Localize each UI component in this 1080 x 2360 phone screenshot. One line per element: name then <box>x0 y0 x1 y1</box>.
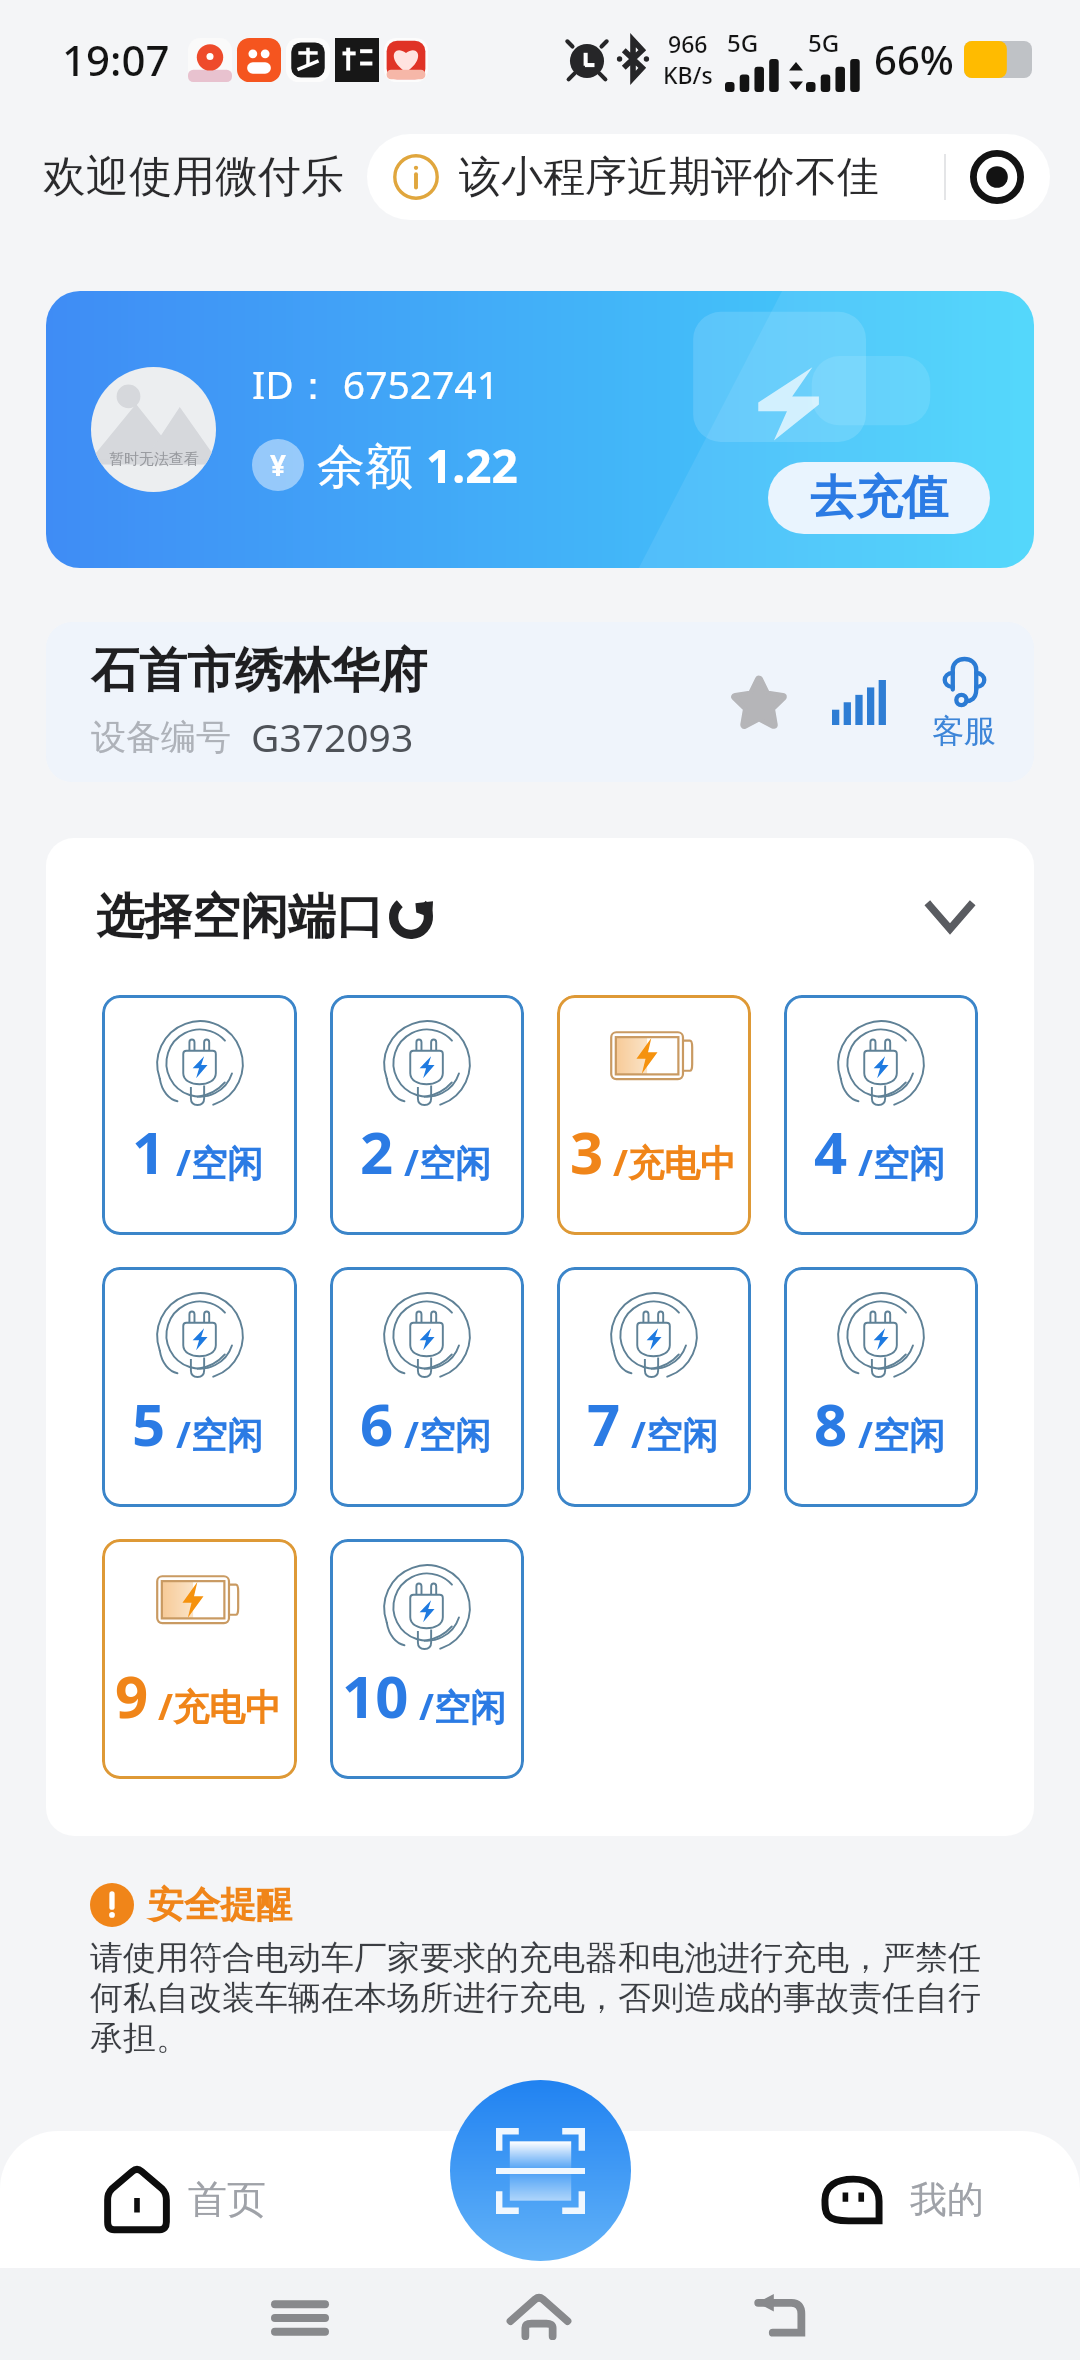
staticText: 设备编号 <box>91 715 231 759</box>
button[interactable]: 9 <box>102 1539 297 1779</box>
staticText: 去充值 <box>810 469 948 527</box>
button[interactable]: 我的 <box>819 2131 1080 2268</box>
staticText: /空闲 <box>858 1138 945 1187</box>
staticText: /空闲 <box>176 1138 263 1187</box>
staticText: 欢迎使用微付乐 <box>43 150 344 204</box>
staticText: 7 <box>587 1384 621 1463</box>
staticText: /空闲 <box>176 1410 263 1459</box>
staticText: 安全提醒 <box>148 1882 292 1927</box>
staticText: 选择空闲端口 <box>96 887 384 947</box>
staticText: /充电中 <box>158 1682 281 1731</box>
staticText: 客服 <box>932 711 996 751</box>
button[interactable]: 7 <box>557 1267 751 1507</box>
button[interactable]: 8 <box>784 1267 978 1507</box>
staticText: 5G <box>727 26 759 59</box>
staticText: 首页 <box>188 2175 266 2224</box>
staticText: 19:07 <box>62 31 170 88</box>
button[interactable]: 去充值 <box>768 462 990 534</box>
button[interactable]: 刷新 <box>384 890 438 944</box>
staticText: 3 <box>570 1112 604 1191</box>
staticText: /空闲 <box>404 1410 491 1459</box>
staticText: 请使用符合电动车厂家要求的充电器和电池进行充电，严禁任何私自改装车辆在本场所进行… <box>90 1937 996 2059</box>
button[interactable]: 扫一扫 <box>450 2080 631 2261</box>
button[interactable]: 3 <box>557 995 751 1235</box>
staticText: G372093 <box>251 710 414 763</box>
staticText: ¥ <box>270 446 287 484</box>
button[interactable]: 1 <box>102 995 297 1235</box>
staticText: /空闲 <box>631 1410 718 1459</box>
staticText: 我的 <box>910 2176 984 2223</box>
button[interactable]: 客服 <box>932 653 1004 751</box>
staticText: 6 <box>360 1384 394 1463</box>
button[interactable]: 石首市绣林华府 <box>46 622 1034 782</box>
staticText: 石首市绣林华府 <box>91 641 427 701</box>
staticText: 5G <box>808 26 840 59</box>
staticText: ID： 6752741 <box>252 357 499 410</box>
staticText: KB/s <box>663 59 713 90</box>
button[interactable]: 5 <box>102 1267 297 1507</box>
staticText: 4 <box>814 1112 848 1191</box>
staticText: 暂时无法查看 <box>109 450 199 469</box>
button[interactable]: 展开 <box>914 881 986 953</box>
button[interactable]: 10 <box>330 1539 524 1779</box>
staticText: 966 <box>668 28 708 59</box>
button[interactable]: 2 <box>330 995 524 1235</box>
button[interactable]: 该小程序近期评价不佳 <box>367 134 1050 220</box>
staticText: 2 <box>360 1112 394 1191</box>
staticText: 余额 <box>317 432 426 498</box>
staticText: /充电中 <box>613 1138 736 1187</box>
staticText: 该小程序近期评价不佳 <box>459 151 879 204</box>
staticText: /空闲 <box>419 1682 506 1731</box>
staticText: 1 <box>132 1112 166 1191</box>
button[interactable]: 4 <box>784 995 978 1235</box>
button[interactable]: 更多 <box>968 148 1026 206</box>
staticText: 1.22 <box>426 434 518 497</box>
staticText: 8 <box>814 1384 848 1463</box>
button[interactable]: 暂时无法查看 <box>46 291 1034 568</box>
staticText: /空闲 <box>858 1410 945 1459</box>
staticText: 10 <box>342 1656 409 1735</box>
button[interactable]: 6 <box>330 1267 524 1507</box>
staticText: 66% <box>874 32 954 86</box>
staticText: 9 <box>115 1656 149 1735</box>
staticText: /空闲 <box>404 1138 491 1187</box>
button[interactable]: 首页 <box>104 2131 290 2268</box>
staticText: 5 <box>132 1384 166 1463</box>
button[interactable]: 收藏 <box>720 663 798 741</box>
